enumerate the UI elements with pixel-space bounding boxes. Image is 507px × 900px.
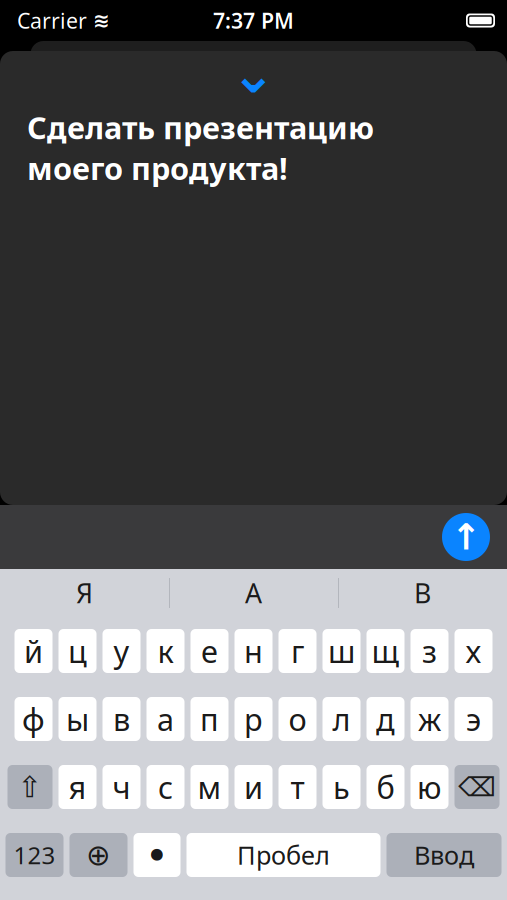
staticText: ч — [112, 767, 130, 807]
button[interactable]: ⌫ — [454, 765, 499, 809]
button[interactable]: ю — [410, 765, 448, 809]
button[interactable]: ш — [322, 629, 360, 673]
button[interactable]: э — [454, 697, 492, 741]
staticText: е — [201, 631, 218, 671]
staticText: г — [291, 631, 304, 671]
button[interactable]: р — [234, 697, 272, 741]
staticText: в — [113, 699, 130, 739]
button[interactable]: ь — [322, 765, 360, 809]
staticText: ⌫ — [458, 772, 496, 802]
button[interactable]: м — [190, 765, 228, 809]
button[interactable]: ц — [58, 629, 96, 673]
button[interactable]: х — [454, 629, 492, 673]
staticText: А — [245, 575, 262, 611]
staticText: о — [288, 699, 306, 739]
button[interactable]: з — [410, 629, 448, 673]
staticText: В — [414, 575, 431, 611]
staticText: а — [157, 699, 174, 739]
staticText: р — [244, 699, 263, 739]
button[interactable]: Я — [0, 569, 169, 617]
staticText: Сделать презентацию моего продукта! — [27, 107, 374, 188]
button[interactable]: у — [102, 629, 140, 673]
staticText: Я — [76, 575, 93, 611]
button[interactable]: ⇧ — [7, 765, 52, 809]
staticText: у — [113, 631, 129, 671]
staticText: й — [24, 631, 43, 671]
staticText: х — [465, 631, 481, 671]
staticText: ф — [22, 699, 45, 739]
button[interactable]: я — [58, 765, 96, 809]
button[interactable]: и — [234, 765, 272, 809]
staticText: ж — [418, 699, 441, 739]
button[interactable]: 123 — [5, 833, 63, 877]
button[interactable]: Collapse — [218, 59, 288, 89]
button[interactable]: Send — [438, 509, 494, 565]
button[interactable]: н — [234, 629, 272, 673]
button[interactable]: ж — [410, 697, 448, 741]
button[interactable]: е — [190, 629, 228, 673]
staticText: ⇧ — [17, 770, 42, 804]
staticText: щ — [371, 631, 399, 671]
staticText: и — [244, 767, 263, 807]
staticText: 123 — [13, 839, 55, 871]
staticText: т — [290, 767, 304, 807]
staticText: ы — [66, 699, 89, 739]
staticText: к — [157, 631, 173, 671]
staticText: б — [376, 767, 394, 807]
button[interactable]: А — [169, 569, 338, 617]
button[interactable]: л — [322, 697, 360, 741]
button[interactable]: к — [146, 629, 184, 673]
button[interactable]: й — [14, 629, 52, 673]
button[interactable]: п — [190, 697, 228, 741]
button[interactable]: в — [102, 697, 140, 741]
button[interactable]: ф — [14, 697, 52, 741]
staticText: 7:37 PM — [213, 6, 294, 35]
staticText: п — [200, 699, 219, 739]
button[interactable]: д — [366, 697, 404, 741]
button[interactable]: т — [278, 765, 316, 809]
staticText: ю — [417, 767, 442, 807]
button[interactable]: г — [278, 629, 316, 673]
button[interactable]: щ — [366, 629, 404, 673]
staticText: ⏺ — [150, 843, 163, 867]
staticText: с — [158, 767, 173, 807]
button[interactable]: с — [146, 765, 184, 809]
button[interactable]: ы — [58, 697, 96, 741]
staticText: ш — [328, 631, 355, 671]
button[interactable]: Пробел — [186, 833, 380, 877]
button[interactable]: Ввод — [386, 833, 501, 877]
button[interactable]: ⊕ — [69, 833, 127, 877]
button[interactable]: В — [338, 569, 507, 617]
staticText: Carrier — [17, 6, 87, 35]
staticText: н — [244, 631, 263, 671]
staticText: Ввод — [414, 838, 474, 872]
staticText: м — [197, 767, 221, 807]
staticText: ≋ — [93, 9, 110, 32]
staticText: ↑ — [451, 517, 481, 557]
staticText: д — [376, 699, 395, 739]
button[interactable]: о — [278, 697, 316, 741]
staticText: ⌄ — [231, 44, 276, 104]
staticText: л — [332, 699, 350, 739]
button[interactable]: ⏺ — [133, 833, 180, 877]
button[interactable]: б — [366, 765, 404, 809]
button[interactable]: ч — [102, 765, 140, 809]
button[interactable]: а — [146, 697, 184, 741]
staticText: ⊕ — [86, 838, 111, 872]
staticText: ц — [68, 631, 87, 671]
staticText: я — [68, 767, 86, 807]
staticText: ь — [333, 767, 350, 807]
staticText: з — [422, 631, 437, 671]
staticText: э — [466, 699, 481, 739]
staticText: Пробел — [237, 838, 330, 872]
